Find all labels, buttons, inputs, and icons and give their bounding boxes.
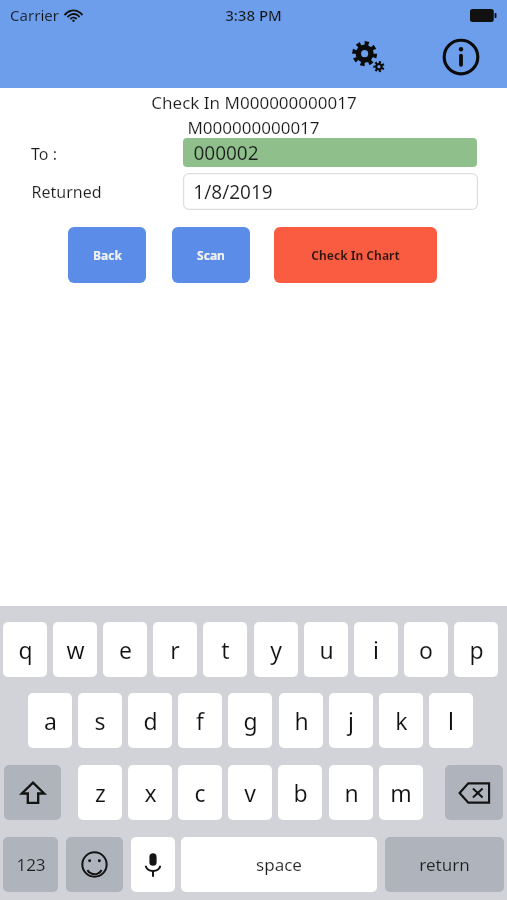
button[interactable]: space [181,837,377,892]
staticText: 1/8/2019 [193,179,273,205]
button[interactable]: r [153,622,197,677]
button[interactable]: q [3,622,47,677]
staticText: d [143,705,158,736]
staticText: To : [31,143,57,165]
button[interactable]: l [429,693,473,748]
staticText: h [294,705,309,736]
staticText: f [196,705,204,736]
staticText: u [319,634,334,665]
staticText: 000002 [193,140,259,166]
button[interactable]: Back [68,227,146,283]
staticText: return [419,853,470,876]
staticText: M000000000017 [187,116,320,139]
staticText: Back [93,247,122,263]
button[interactable]: a [28,693,72,748]
staticText: 3:38 PM [225,5,282,25]
staticText: p [469,634,484,665]
staticText: y [270,634,282,665]
staticText: r [170,634,180,665]
staticText: j [348,705,354,736]
button[interactable]: t [203,622,247,677]
button[interactable]: g [228,693,272,748]
staticText: l [448,705,454,736]
button[interactable]: n [329,765,373,820]
button[interactable]: u [304,622,348,677]
staticText: m [390,777,412,808]
staticText: Carrier [10,5,59,25]
button[interactable]: Emoji [66,837,123,892]
button[interactable]: o [404,622,448,677]
staticText: 123 [16,853,46,876]
staticText: n [344,777,359,808]
staticText: x [144,777,157,808]
staticText: o [419,634,433,665]
button[interactable]: k [379,693,423,748]
button[interactable]: b [278,765,322,820]
button[interactable]: Backspace [445,765,503,820]
staticText: k [395,705,408,736]
staticText: w [66,634,85,665]
button[interactable]: y [254,622,298,677]
button[interactable]: s [78,693,122,748]
staticText: t [221,634,230,665]
staticText: Check In M000000000017 [151,91,357,114]
button[interactable]: x [128,765,172,820]
staticText: i [373,634,379,665]
button[interactable]: Check In Chart [274,227,437,283]
button[interactable]: f [178,693,222,748]
staticText: z [95,777,106,808]
staticText: s [94,705,106,736]
button[interactable]: i [354,622,398,677]
button[interactable]: e [103,622,147,677]
staticText: b [293,777,308,808]
staticText: Returned [31,181,102,203]
button[interactable]: c [178,765,222,820]
button[interactable]: Settings [345,34,391,80]
staticText: q [18,634,33,665]
button[interactable]: z [78,765,122,820]
button[interactable]: 1/8/2019 [183,173,478,210]
button[interactable]: Shift [4,765,61,820]
staticText: Check In Chart [311,247,400,263]
staticText: space [256,853,302,876]
button[interactable]: Dictation [131,837,175,892]
button[interactable]: Numbers [3,837,58,892]
button[interactable]: Scan [172,227,250,283]
button[interactable]: h [279,693,323,748]
staticText: c [194,777,206,808]
button[interactable]: d [128,693,172,748]
button[interactable]: 000002 [183,138,477,167]
button[interactable]: j [329,693,373,748]
button[interactable]: p [454,622,498,677]
button[interactable]: return [385,837,504,892]
staticText: v [244,777,256,808]
button[interactable]: Information [438,34,484,80]
staticText: Scan [197,247,225,263]
staticText: e [119,634,132,665]
button[interactable]: w [53,622,97,677]
button[interactable]: m [379,765,423,820]
staticText: a [44,705,57,736]
staticText: g [243,705,258,736]
button[interactable]: v [228,765,272,820]
